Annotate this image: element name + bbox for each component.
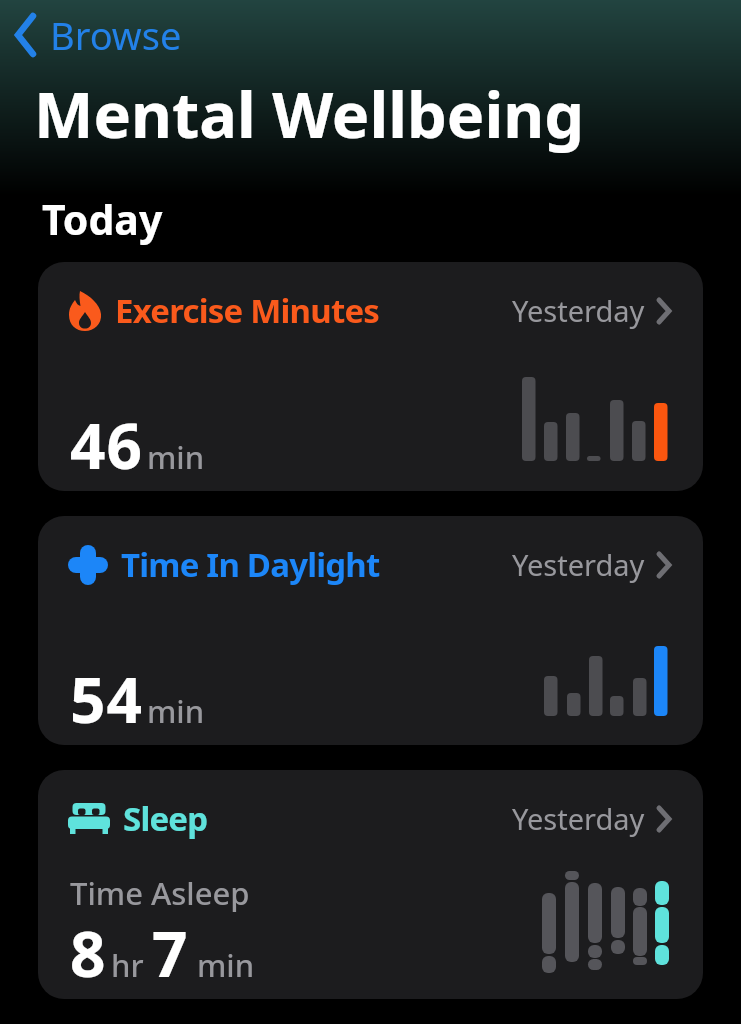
- button[interactable]: Exercise Minutes: [38, 262, 703, 491]
- staticText: Yesterday: [512, 545, 645, 584]
- staticText: Yesterday: [512, 799, 645, 838]
- staticText: Today: [42, 191, 163, 247]
- staticText: min: [147, 436, 205, 478]
- staticText: 8: [70, 911, 106, 995]
- button[interactable]: Time In Daylight: [38, 516, 703, 745]
- staticText: min: [147, 690, 205, 732]
- staticText: Browse: [50, 9, 182, 61]
- staticText: Time In Daylight: [121, 542, 380, 587]
- staticText: Exercise Minutes: [115, 288, 380, 333]
- staticText: min: [197, 944, 255, 986]
- staticText: Yesterday: [512, 291, 645, 330]
- button[interactable]: Browse: [14, 9, 182, 61]
- button[interactable]: Sleep: [38, 770, 703, 999]
- staticText: Mental Wellbeing: [34, 71, 585, 157]
- staticText: hr: [111, 944, 144, 986]
- staticText: 54: [70, 657, 143, 741]
- staticText: 46: [70, 403, 143, 487]
- staticText: 7: [152, 911, 188, 995]
- staticText: Time Asleep: [70, 872, 250, 914]
- staticText: Sleep: [123, 796, 208, 841]
